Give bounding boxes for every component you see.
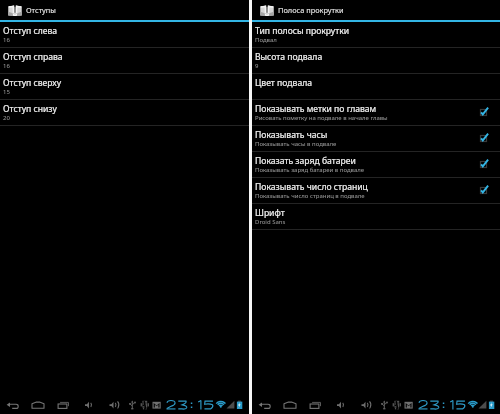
button[interactable]: Показывать часы xyxy=(252,126,500,152)
staticText: Рисовать пометку на подвале в начале гла… xyxy=(255,114,388,122)
button[interactable]: Отступ сверху xyxy=(0,74,249,100)
other: System navigation bar xyxy=(0,392,249,414)
button[interactable]: Отступы xyxy=(0,0,249,20)
staticText: Показывать часы xyxy=(255,129,328,141)
button[interactable]: Тип полосы прокрутки xyxy=(252,22,500,48)
staticText: Отступ справа xyxy=(3,51,63,63)
staticText: Отступ слева xyxy=(3,25,58,37)
staticText: Отступ снизу xyxy=(3,103,57,115)
staticText: Тип полосы прокрутки xyxy=(255,25,350,37)
staticText: Отступ сверху xyxy=(3,77,62,89)
button[interactable]: Показывать число страниц xyxy=(252,178,500,204)
staticText: Цвет подвала xyxy=(255,77,312,89)
button[interactable]: Отступ справа xyxy=(0,48,249,74)
staticText: Отступы xyxy=(26,5,56,15)
staticText: 16 xyxy=(3,36,10,44)
other: System navigation bar xyxy=(252,392,500,414)
staticText: Высота подвала xyxy=(255,51,323,63)
staticText: Показывать число страниц в подвале xyxy=(255,192,365,200)
button[interactable]: Отступ снизу xyxy=(0,100,249,126)
button[interactable]: Показать заряд батареи xyxy=(252,152,500,178)
staticText: 16 xyxy=(3,62,10,70)
staticText: Показывать заряд батареи в подвале xyxy=(255,166,365,174)
staticText: Показать заряд батареи xyxy=(255,155,356,167)
button[interactable]: Показывать метки по главам xyxy=(252,100,500,126)
button[interactable]: Цвет подвала xyxy=(252,74,500,100)
staticText: Показывать число страниц xyxy=(255,181,368,193)
button[interactable]: Toggle xyxy=(477,158,490,171)
staticText: Шрифт xyxy=(255,207,285,219)
staticText: Показывать метки по главам xyxy=(255,103,377,115)
staticText: 20 xyxy=(3,114,10,122)
button[interactable]: Полоса прокрутки xyxy=(252,0,500,20)
button[interactable]: Toggle xyxy=(477,184,490,197)
button[interactable]: Отступ слева xyxy=(0,22,249,48)
staticText: Droid Sans xyxy=(255,218,286,226)
button[interactable]: Шрифт xyxy=(252,204,500,230)
button[interactable]: Toggle xyxy=(477,106,490,119)
staticText: Подвал xyxy=(255,36,277,44)
button[interactable]: Toggle xyxy=(477,132,490,145)
staticText: Показывать часы в подвале xyxy=(255,140,337,148)
staticText: 9 xyxy=(255,62,259,70)
staticText: Полоса прокрутки xyxy=(278,5,344,15)
staticText: 15 xyxy=(3,88,10,96)
button[interactable]: Высота подвала xyxy=(252,48,500,74)
